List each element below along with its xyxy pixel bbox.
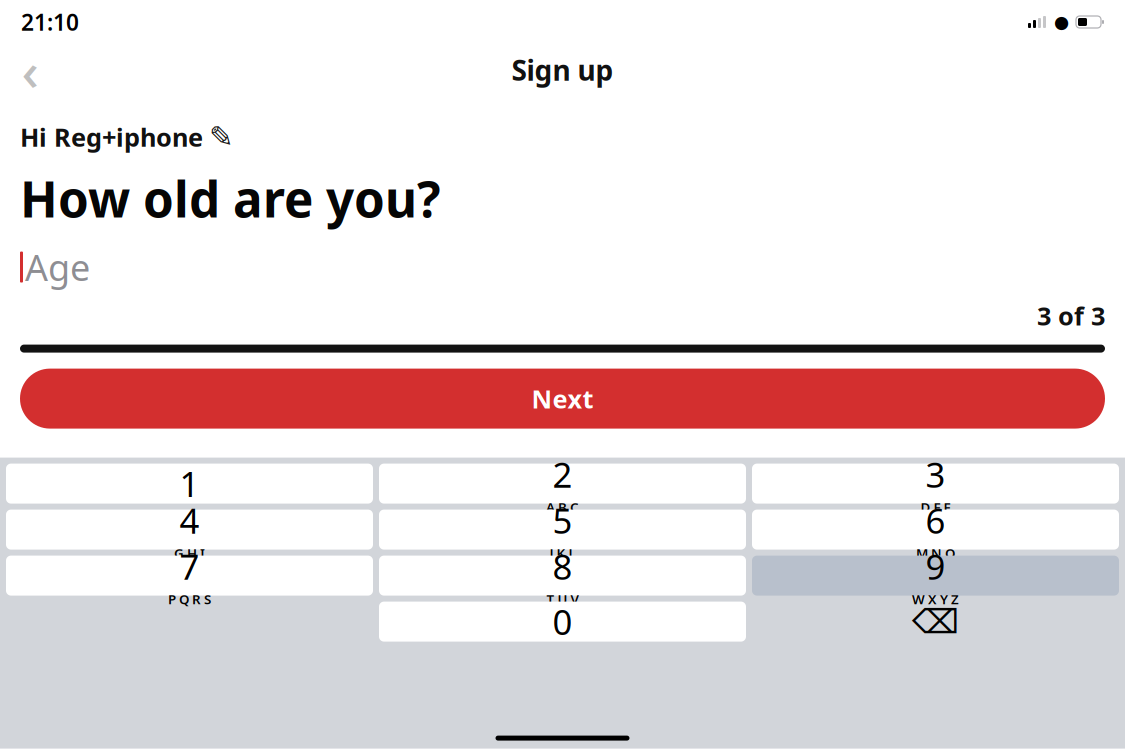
- staticText: P Q R S: [168, 590, 211, 608]
- staticText: Hi Reg+iphone: [20, 120, 203, 154]
- staticText: 1: [179, 461, 199, 507]
- staticText: 0: [552, 599, 572, 645]
- staticText: Sign up: [511, 51, 613, 89]
- staticText: 6: [925, 497, 945, 543]
- button[interactable]: 5: [379, 510, 746, 550]
- button[interactable]: Next: [20, 369, 1105, 429]
- button[interactable]: 8: [379, 556, 746, 596]
- staticText: 3 of 3: [1037, 299, 1105, 333]
- staticText: 21:10: [21, 7, 79, 37]
- staticText: Age: [25, 243, 90, 291]
- staticText: G H I: [174, 544, 205, 562]
- button[interactable]: 1: [6, 464, 373, 504]
- staticText: ●: [1054, 12, 1069, 32]
- button[interactable]: Back: [8, 48, 52, 92]
- button[interactable]: 6: [752, 510, 1119, 550]
- staticText: J K L: [549, 544, 575, 562]
- staticText: 5: [552, 497, 572, 543]
- button[interactable]: 4: [6, 510, 373, 550]
- staticText: M N O: [916, 544, 955, 562]
- button[interactable]: 0: [379, 602, 746, 642]
- staticText: ✎: [209, 120, 234, 153]
- button[interactable]: 7: [6, 556, 373, 596]
- staticText: 4: [179, 497, 199, 543]
- staticText: A B C: [546, 498, 579, 516]
- button[interactable]: 9: [752, 556, 1119, 596]
- staticText: ‹: [21, 35, 38, 105]
- staticText: W X Y Z: [912, 590, 959, 608]
- staticText: How old are you?: [20, 166, 441, 231]
- staticText: D E F: [920, 498, 950, 516]
- staticText: 8: [552, 543, 572, 589]
- staticText: ⌫: [912, 603, 959, 640]
- staticText: 2: [552, 451, 572, 497]
- button[interactable]: 2: [379, 464, 746, 504]
- button[interactable]: Delete: [752, 602, 1119, 642]
- staticText: 7: [179, 543, 199, 589]
- staticText: 9: [925, 543, 945, 589]
- staticText: Next: [531, 382, 593, 415]
- staticText: 3: [925, 451, 945, 497]
- button[interactable]: 3: [752, 464, 1119, 504]
- staticText: T U V: [546, 590, 578, 608]
